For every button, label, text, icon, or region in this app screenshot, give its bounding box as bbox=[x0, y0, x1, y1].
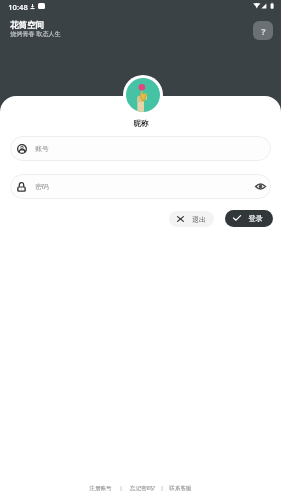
staticText: 账号 bbox=[35, 144, 49, 153]
button[interactable]: Show password bbox=[255, 183, 266, 190]
button[interactable]: 退出 bbox=[169, 211, 214, 227]
staticText: ? bbox=[261, 25, 266, 37]
staticText: 注册账号 bbox=[89, 485, 112, 492]
button[interactable]: 登录 bbox=[225, 210, 273, 227]
staticText: 登录 bbox=[248, 214, 263, 223]
staticText: 昵称 bbox=[133, 119, 149, 129]
button[interactable]: 联系客服 bbox=[169, 485, 192, 492]
staticText: | bbox=[160, 484, 164, 492]
staticText: 联系客服 bbox=[169, 485, 192, 492]
button[interactable]: 密码 bbox=[10, 174, 271, 199]
staticText: 花筒空间 bbox=[10, 20, 44, 31]
staticText: | bbox=[119, 484, 123, 492]
button[interactable]: 账号 bbox=[10, 136, 271, 161]
staticText: 退出 bbox=[192, 215, 206, 224]
button[interactable]: 注册账号 bbox=[89, 485, 112, 492]
staticText: 烧烤青春 取态人生 bbox=[10, 29, 61, 37]
staticText: 10:48 bbox=[8, 2, 28, 12]
staticText: 密码 bbox=[35, 182, 49, 191]
button[interactable]: 忘记密码? bbox=[130, 484, 155, 492]
staticText: 忘记密码? bbox=[130, 484, 155, 492]
button[interactable]: Help bbox=[253, 21, 273, 40]
